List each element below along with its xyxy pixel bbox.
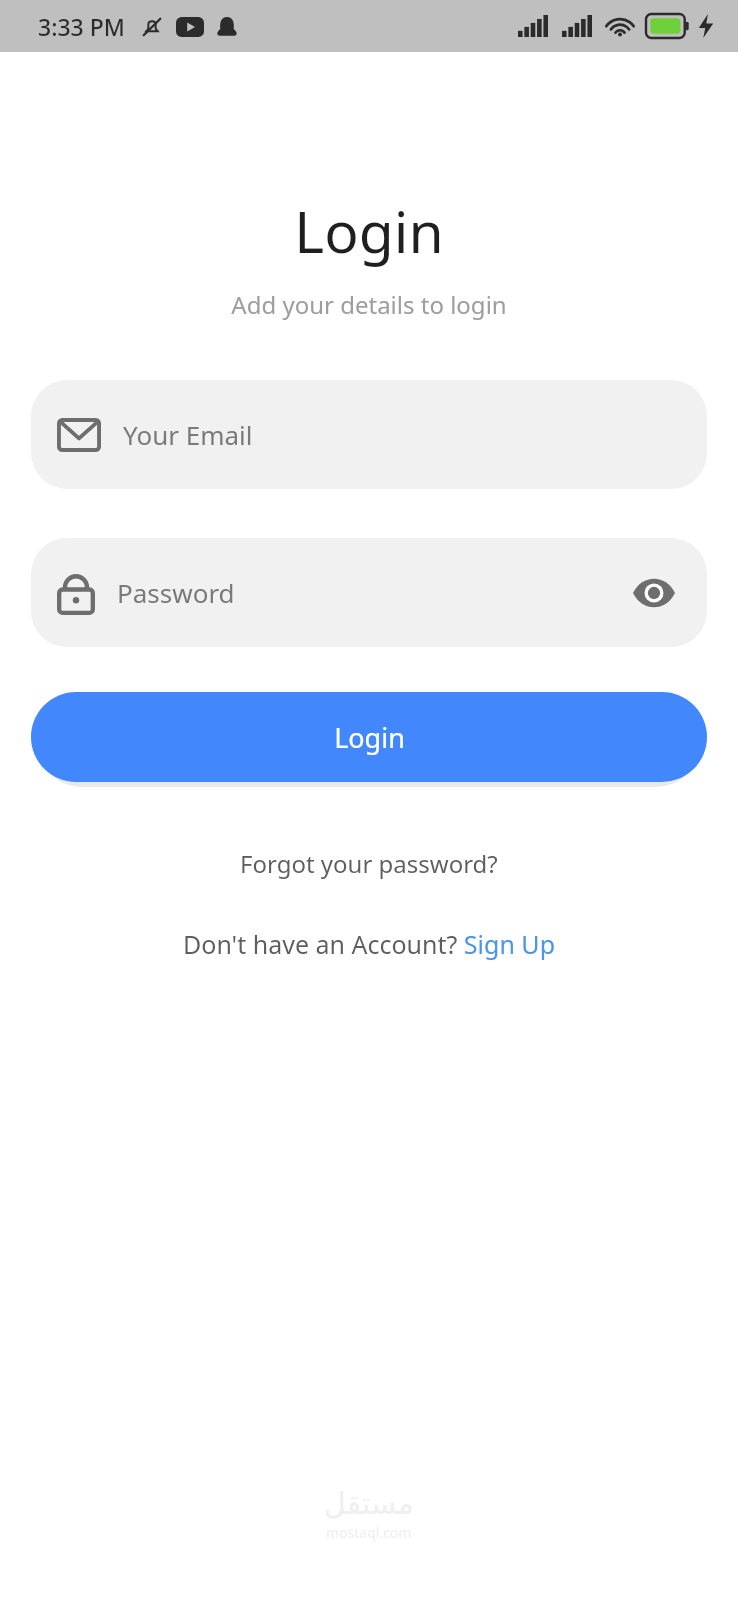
staticText: mostaql.com [326,1523,412,1542]
button[interactable]: Login [31,692,707,782]
button[interactable]: Show password [627,573,681,613]
staticText: Login [334,719,405,756]
staticText: Your Email [123,417,681,452]
button[interactable]: Password [31,538,707,647]
staticText: مستقل [324,1486,414,1521]
staticText: Password [117,575,627,610]
button[interactable]: Don't have an Account? Sign Up [171,921,568,967]
staticText: Login [294,192,444,270]
button[interactable]: Your Email [31,380,707,489]
staticText: Don't have an Account? Sign Up [183,927,556,961]
button[interactable]: Forgot your password? [228,841,510,886]
staticText: Forgot your password? [240,847,498,880]
staticText: Add your details to login [231,288,507,321]
staticText: 3:33 PM [38,11,125,42]
